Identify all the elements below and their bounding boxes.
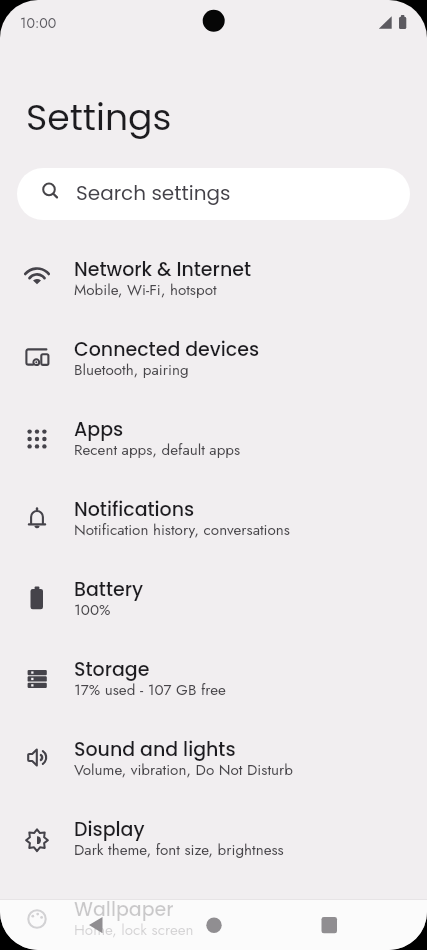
button[interactable]: Apps: [0, 399, 427, 479]
staticText: Notification history, conversations: [74, 519, 290, 541]
button[interactable]: [305, 901, 353, 949]
button[interactable]: Notifications: [0, 479, 427, 559]
staticText: Battery: [74, 576, 144, 603]
staticText: 17% used - 107 GB free: [74, 679, 226, 701]
staticText: Settings: [26, 92, 172, 143]
staticText: Recent apps, default apps: [74, 439, 241, 461]
staticText: Network & Internet: [74, 256, 252, 283]
button[interactable]: Wallpaper: [0, 879, 427, 950]
staticText: Mobile, Wi-Fi, hotspot: [74, 279, 217, 301]
button[interactable]: Display: [0, 799, 427, 879]
button[interactable]: Sound and lights: [0, 719, 427, 799]
staticText: Volume, vibration, Do Not Disturb: [74, 759, 293, 781]
staticText: Wallpaper: [74, 896, 174, 923]
staticText: 100%: [74, 599, 111, 621]
staticText: Apps: [74, 416, 124, 443]
button[interactable]: Storage: [0, 639, 427, 719]
button[interactable]: [72, 901, 120, 949]
staticText: Home, lock screen: [74, 919, 194, 941]
staticText: Search settings: [76, 179, 231, 207]
button[interactable]: Connected devices: [0, 319, 427, 399]
staticText: Bluetooth, pairing: [74, 359, 189, 381]
staticText: Display: [74, 816, 145, 843]
staticText: Notifications: [74, 496, 195, 523]
staticText: Storage: [74, 656, 150, 683]
button[interactable]: Battery: [0, 559, 427, 639]
button[interactable]: Search settings: [17, 168, 410, 220]
staticText: Connected devices: [74, 336, 260, 363]
button[interactable]: [190, 901, 238, 949]
staticText: 10:00: [20, 13, 57, 34]
staticText: Dark theme, font size, brightness: [74, 839, 284, 861]
staticText: Sound and lights: [74, 736, 236, 763]
button[interactable]: Network & Internet: [0, 239, 427, 319]
